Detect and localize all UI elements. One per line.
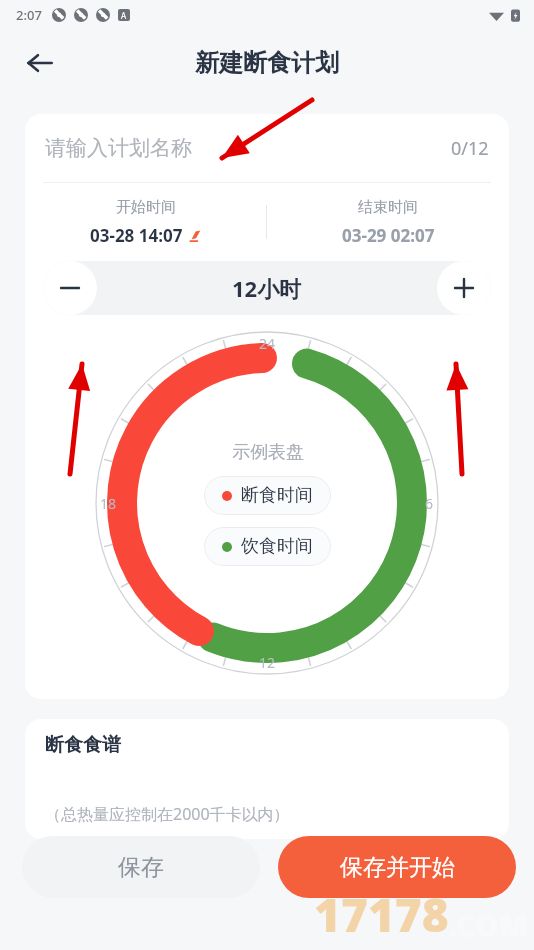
staticText: 开始时间 (116, 198, 176, 217)
staticText: 03-28 14:07 (90, 224, 183, 247)
staticText: 03-29 02:07 (342, 224, 435, 247)
staticText: 24 (259, 334, 276, 353)
staticText: 0/12 (451, 136, 489, 161)
staticText: 结束时间 (358, 198, 418, 217)
staticText: 请输入计划名称 (45, 135, 192, 161)
button[interactable]: Increase hours (437, 261, 491, 315)
staticText: 新建断食计划 (195, 48, 339, 78)
button[interactable]: 保存并开始 (278, 836, 516, 898)
button[interactable]: Back (16, 39, 64, 87)
staticText: 2:07 (16, 6, 42, 24)
staticText: 17178 (314, 883, 449, 946)
staticText: 饮食时间 (241, 535, 313, 558)
button[interactable]: 饮食时间 (204, 527, 331, 566)
staticText: 12小时 (232, 273, 302, 303)
staticText: 断食时间 (241, 484, 313, 507)
staticText: 6 (425, 494, 434, 513)
staticText: 断食食谱 (45, 733, 121, 757)
staticText: （总热量应控制在2000千卡以内） (45, 803, 290, 825)
staticText: A (121, 10, 127, 21)
button[interactable]: 开始时间 (25, 183, 266, 261)
staticText: 保存 (118, 853, 164, 882)
button[interactable]: 请输入计划名称 (25, 114, 509, 182)
button[interactable]: 结束时间 (267, 183, 509, 261)
staticText: 18 (100, 494, 117, 513)
button[interactable]: 保存 (22, 836, 260, 898)
button[interactable]: Decrease hours (43, 261, 97, 315)
staticText: 12 (259, 653, 276, 672)
button[interactable]: 断食时间 (204, 476, 331, 515)
staticText: 示例表盘 (232, 441, 304, 464)
staticText: 保存并开始 (340, 853, 455, 882)
